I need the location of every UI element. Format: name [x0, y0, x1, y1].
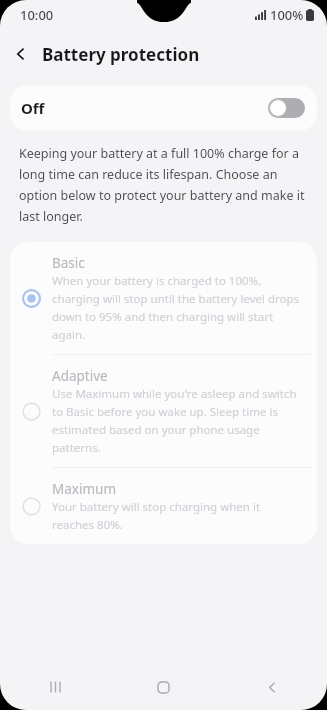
button[interactable]: Basic [10, 242, 317, 354]
staticText: 10:00 [20, 6, 54, 24]
staticText: Maximum [52, 480, 117, 498]
button[interactable]: Adaptive [10, 355, 317, 467]
staticText: 100% [270, 6, 304, 24]
button[interactable]: Recents [0, 664, 109, 710]
staticText: When your battery is charged to 100%, ch… [52, 273, 301, 342]
staticText: Adaptive [52, 367, 108, 385]
staticText: Battery protection [42, 43, 200, 66]
button[interactable]: Back [0, 33, 42, 75]
button[interactable]: Back [218, 664, 327, 710]
button[interactable]: Home [109, 664, 218, 710]
staticText: Your battery will stop charging when it … [52, 499, 301, 532]
staticText: Use Maximum while you're asleep and swit… [52, 386, 301, 455]
staticText: Keeping your battery at a full 100% char… [19, 145, 308, 225]
button[interactable]: Off [10, 85, 317, 131]
staticText: Basic [52, 254, 85, 272]
button[interactable]: Maximum [10, 468, 317, 544]
staticText: Off [21, 98, 45, 118]
